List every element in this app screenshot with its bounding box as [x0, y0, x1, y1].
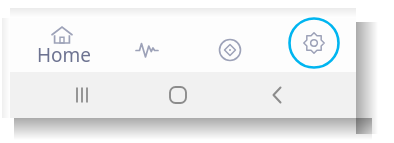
button[interactable]: Explore [203, 28, 257, 82]
button[interactable]: Settings [288, 18, 342, 72]
staticText: Home [26, 42, 102, 68]
button[interactable]: Activity [120, 28, 174, 82]
button[interactable]: Recents [66, 79, 98, 111]
button[interactable]: Home [162, 79, 194, 111]
button[interactable]: Back [261, 79, 293, 111]
button[interactable]: Home [26, 18, 102, 72]
